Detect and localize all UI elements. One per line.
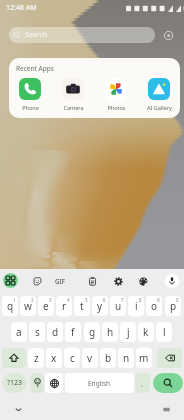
button[interactable]: Stickers <box>30 274 44 288</box>
staticText: y <box>97 299 103 313</box>
button[interactable]: i <box>128 296 144 316</box>
button[interactable]: m <box>136 348 152 368</box>
button[interactable]: Photos <box>100 78 132 111</box>
staticText: Camera <box>63 104 84 111</box>
button[interactable]: Search <box>9 27 155 43</box>
button[interactable]: Clipboard <box>85 274 99 288</box>
button[interactable]: Settings <box>111 274 125 288</box>
staticText: j <box>127 325 130 339</box>
staticText: f <box>71 325 75 339</box>
button[interactable]: y <box>92 296 108 316</box>
button[interactable]: u <box>110 296 126 316</box>
staticText: e <box>43 299 49 313</box>
staticText: English <box>88 379 111 388</box>
staticText: 5 <box>85 297 88 303</box>
button[interactable]: Themes <box>136 274 150 288</box>
staticText: g <box>89 325 96 339</box>
button[interactable]: l <box>156 322 172 342</box>
staticText: a <box>16 325 22 339</box>
staticText: v <box>87 351 93 365</box>
button[interactable]: Hide keyboard <box>12 403 24 415</box>
staticText: 12:48 AM <box>6 3 37 13</box>
button[interactable]: n <box>118 348 134 368</box>
button[interactable]: p <box>165 296 181 316</box>
staticText: t <box>80 299 84 313</box>
staticText: . <box>141 378 144 389</box>
staticText: d <box>52 325 59 339</box>
button[interactable]: o <box>146 296 162 316</box>
staticText: b <box>105 351 112 365</box>
button[interactable]: x <box>46 348 62 368</box>
button[interactable]: Change language <box>45 373 63 393</box>
button[interactable]: Emoji <box>30 373 44 393</box>
staticText: 2 <box>31 297 34 303</box>
button[interactable]: d <box>47 322 63 342</box>
staticText: n <box>123 351 130 365</box>
button[interactable]: e <box>38 296 54 316</box>
button[interactable]: Backspace <box>157 348 182 368</box>
button[interactable]: GIF <box>52 274 67 287</box>
staticText: ?123 <box>7 378 23 388</box>
staticText: 7 <box>121 297 124 303</box>
button[interactable]: Keyboard <box>160 403 172 415</box>
button[interactable]: Search <box>153 373 183 393</box>
staticText: 3 <box>49 297 52 303</box>
staticText: AI Gallery <box>147 104 172 111</box>
button[interactable]: z <box>28 348 44 368</box>
staticText: GIF <box>55 277 65 285</box>
staticText: 0 <box>176 297 179 303</box>
staticText: 9 <box>157 297 160 303</box>
staticText: s <box>35 325 40 339</box>
staticText: x <box>51 351 57 365</box>
button[interactable]: h <box>102 322 118 342</box>
staticText: 1 <box>13 297 16 303</box>
button[interactable]: f <box>65 322 81 342</box>
staticText: Photos <box>107 104 126 111</box>
button[interactable]: s <box>29 322 45 342</box>
button[interactable]: g <box>84 322 100 342</box>
staticText: h <box>107 325 114 339</box>
staticText: 4 <box>67 297 70 303</box>
button[interactable]: Phone <box>14 78 46 111</box>
staticText: 6 <box>103 297 106 303</box>
button[interactable]: English <box>65 373 134 393</box>
button[interactable]: w <box>20 296 36 316</box>
staticText: p <box>170 299 177 313</box>
button[interactable]: Voice input <box>165 274 179 288</box>
staticText: r <box>62 299 67 313</box>
staticText: u <box>115 299 122 313</box>
staticText: i <box>135 299 138 313</box>
staticText: 8 <box>139 297 142 303</box>
staticText: z <box>34 351 39 365</box>
button[interactable]: Camera <box>57 78 89 111</box>
staticText: q <box>7 299 14 313</box>
button[interactable]: AI Gallery <box>143 78 175 111</box>
staticText: Phone <box>22 104 39 111</box>
staticText: k <box>143 325 149 339</box>
staticText: m <box>139 351 149 365</box>
button[interactable]: k <box>138 322 154 342</box>
button[interactable]: t <box>74 296 90 316</box>
button[interactable]: . <box>135 373 150 393</box>
button[interactable]: j <box>120 322 136 342</box>
staticText: Recent Apps <box>16 64 54 73</box>
button[interactable]: v <box>82 348 98 368</box>
staticText: Search <box>25 30 48 40</box>
button[interactable]: q <box>2 296 18 316</box>
staticText: o <box>151 299 158 313</box>
button[interactable]: a <box>11 322 27 342</box>
button[interactable]: ?123 <box>2 373 27 393</box>
staticText: l <box>163 325 166 339</box>
button[interactable]: Assistant <box>161 28 175 42</box>
button[interactable]: Keyboard modes <box>3 273 18 288</box>
staticText: c <box>70 351 75 365</box>
button[interactable]: c <box>64 348 80 368</box>
button[interactable]: r <box>56 296 72 316</box>
button[interactable]: b <box>100 348 116 368</box>
staticText: w <box>24 299 32 313</box>
button[interactable]: Shift <box>2 348 26 368</box>
